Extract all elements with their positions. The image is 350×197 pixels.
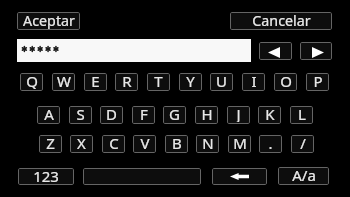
staticText: Q xyxy=(26,73,38,89)
staticText: T xyxy=(154,73,163,89)
button[interactable]: G xyxy=(163,106,186,124)
button[interactable]: C xyxy=(102,135,125,153)
staticText: A/a xyxy=(292,167,316,183)
staticText: P xyxy=(313,73,323,89)
staticText: Z xyxy=(46,135,55,151)
staticText: G xyxy=(169,106,180,122)
staticText: W xyxy=(57,73,71,89)
staticText: Aceptar xyxy=(23,12,75,29)
staticText: K xyxy=(265,106,275,122)
button[interactable]: Backspace xyxy=(212,168,267,185)
staticText: 123 xyxy=(33,168,59,183)
button[interactable]: Move cursor left xyxy=(259,42,292,60)
button[interactable]: A xyxy=(37,106,60,124)
staticText: M xyxy=(233,135,247,151)
button[interactable]: M xyxy=(228,135,251,153)
button[interactable]: X xyxy=(70,135,93,153)
button[interactable]: Space xyxy=(83,168,201,185)
button[interactable]: E xyxy=(84,73,107,91)
button[interactable]: 123 xyxy=(18,168,74,185)
staticText: I xyxy=(251,73,257,89)
staticText: C xyxy=(109,135,119,151)
staticText: B xyxy=(172,135,182,151)
button[interactable]: K xyxy=(258,106,281,124)
button[interactable]: U xyxy=(210,73,233,91)
button[interactable]: B xyxy=(165,135,188,153)
button[interactable]: J xyxy=(227,106,250,124)
button[interactable]: Q xyxy=(20,73,43,91)
staticText: A xyxy=(44,106,54,122)
button[interactable]: P xyxy=(306,73,329,91)
staticText: Y xyxy=(186,73,195,89)
staticText: U xyxy=(216,73,227,89)
staticText: N xyxy=(202,135,214,151)
button[interactable]: L xyxy=(290,106,313,124)
button[interactable]: S xyxy=(69,106,92,124)
button[interactable]: O xyxy=(274,73,297,91)
button[interactable]: H xyxy=(195,106,218,124)
button[interactable]: I xyxy=(242,73,265,91)
staticText: D xyxy=(106,106,117,122)
button[interactable]: . xyxy=(259,135,282,153)
button[interactable]: W xyxy=(52,73,75,91)
button[interactable]: R xyxy=(115,73,138,91)
staticText: / xyxy=(300,135,306,151)
button[interactable]: Aceptar xyxy=(17,12,80,30)
staticText: H xyxy=(201,106,213,122)
staticText: S xyxy=(76,106,85,122)
button[interactable]: Y xyxy=(179,73,202,91)
staticText: L xyxy=(298,106,306,122)
staticText: J xyxy=(236,106,241,122)
staticText: . xyxy=(268,135,273,151)
staticText: F xyxy=(140,106,148,122)
staticText: R xyxy=(122,73,132,89)
staticText: Cancelar xyxy=(252,12,311,29)
button[interactable]: / xyxy=(291,135,314,153)
button[interactable]: F xyxy=(132,106,155,124)
button[interactable]: Move cursor right xyxy=(300,42,332,60)
button[interactable]: A/a xyxy=(278,167,329,185)
staticText: X xyxy=(77,135,86,151)
button[interactable]: T xyxy=(147,73,170,91)
button[interactable]: D xyxy=(100,106,123,124)
button[interactable]: N xyxy=(196,135,219,153)
staticText: V xyxy=(140,135,150,151)
button[interactable]: Cancelar xyxy=(230,12,332,30)
staticText: E xyxy=(91,73,100,89)
staticText: O xyxy=(280,73,292,89)
button[interactable]: V xyxy=(133,135,156,153)
button[interactable]: Z xyxy=(39,135,62,153)
button[interactable] xyxy=(17,39,251,62)
